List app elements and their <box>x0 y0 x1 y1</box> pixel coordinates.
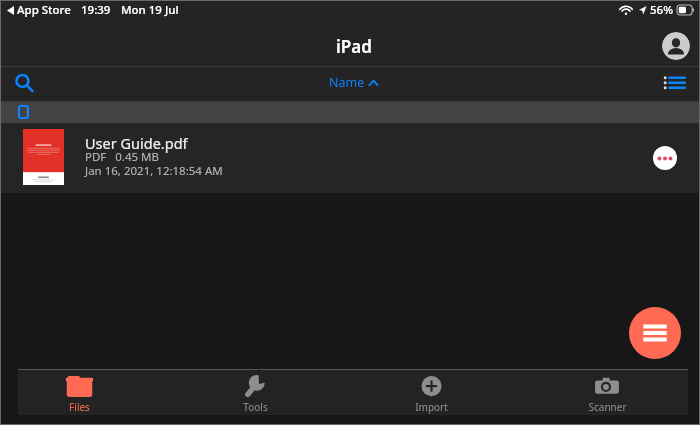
button[interactable]: Files <box>35 369 123 415</box>
staticText: iPad <box>336 35 372 58</box>
staticText: Tools <box>243 400 268 414</box>
button[interactable]: User Guide.pdf <box>0 123 700 193</box>
button[interactable]: Import <box>387 369 475 415</box>
button[interactable]: Search <box>13 73 34 94</box>
button[interactable]: Name <box>329 74 378 91</box>
staticText: 56% <box>650 2 673 18</box>
staticText: 19:39 <box>81 2 111 18</box>
staticText: App Store <box>17 2 71 18</box>
button[interactable]: Account <box>662 32 690 60</box>
staticText: Jan 16, 2021, 12:18:54 AM <box>85 163 223 179</box>
staticText: Mon 19 Jul <box>121 2 179 18</box>
button[interactable]: More options <box>653 146 677 170</box>
button[interactable]: Menu <box>629 307 681 359</box>
staticText: User Guide.pdf <box>85 133 188 153</box>
staticText: Scanner <box>588 400 627 414</box>
button[interactable]: List view <box>663 76 685 89</box>
staticText: Files <box>69 400 90 414</box>
staticText: Name <box>329 74 365 91</box>
button[interactable]: Scanner <box>563 369 651 415</box>
button[interactable]: Tools <box>211 369 299 415</box>
staticText: PDF 0.45 MB <box>85 149 160 165</box>
staticText: Import <box>415 400 448 414</box>
